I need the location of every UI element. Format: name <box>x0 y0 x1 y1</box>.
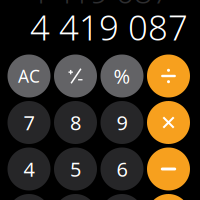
button[interactable]: Minus <box>147 147 190 190</box>
staticText: AC <box>18 64 40 87</box>
staticText: 4 <box>23 156 34 182</box>
button[interactable]: 4 <box>7 147 50 190</box>
button[interactable]: Plus <box>147 194 190 200</box>
staticText: 5 <box>70 156 81 182</box>
staticText: % <box>113 63 130 89</box>
staticText: 6 <box>116 156 127 182</box>
button[interactable]: 7 <box>7 101 50 144</box>
button[interactable]: Plus minus <box>54 54 97 97</box>
button[interactable]: 1 <box>7 194 50 200</box>
button[interactable]: 6 <box>100 147 143 190</box>
button[interactable]: 8 <box>54 101 97 144</box>
button[interactable]: Multiply <box>147 101 190 144</box>
staticText: 7 <box>23 109 34 136</box>
button[interactable]: 5 <box>54 147 97 190</box>
button[interactable]: % <box>100 54 143 97</box>
staticText: 8 <box>70 109 81 136</box>
button[interactable]: Divide <box>147 54 190 97</box>
button[interactable]: 2 <box>54 194 97 200</box>
button[interactable]: AC <box>7 54 50 97</box>
staticText: 9 <box>116 109 127 136</box>
button[interactable]: 3 <box>100 194 143 200</box>
button[interactable]: 9 <box>100 101 143 144</box>
staticText: 4 419 087 <box>28 0 170 12</box>
staticText: 4 419 087 <box>30 4 188 50</box>
